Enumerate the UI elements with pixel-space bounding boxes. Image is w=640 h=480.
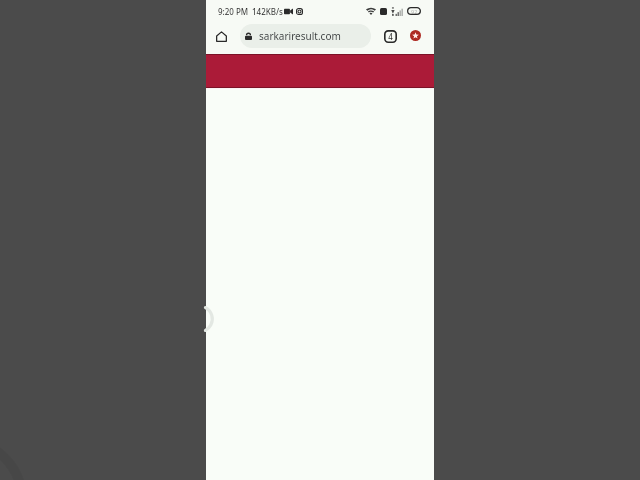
button[interactable]: Tabs, 4 open <box>383 29 397 43</box>
staticText: 142KB/s <box>252 6 283 17</box>
staticText: 4 <box>388 31 393 42</box>
button[interactable]: sarkariresult.com <box>240 24 371 48</box>
staticText: 9:20 PM <box>218 6 249 17</box>
button[interactable]: Home <box>211 26 231 46</box>
button[interactable]: Browser menu <box>410 30 421 41</box>
staticText: 92 <box>411 8 418 15</box>
staticText: sarkariresult.com <box>259 29 341 43</box>
